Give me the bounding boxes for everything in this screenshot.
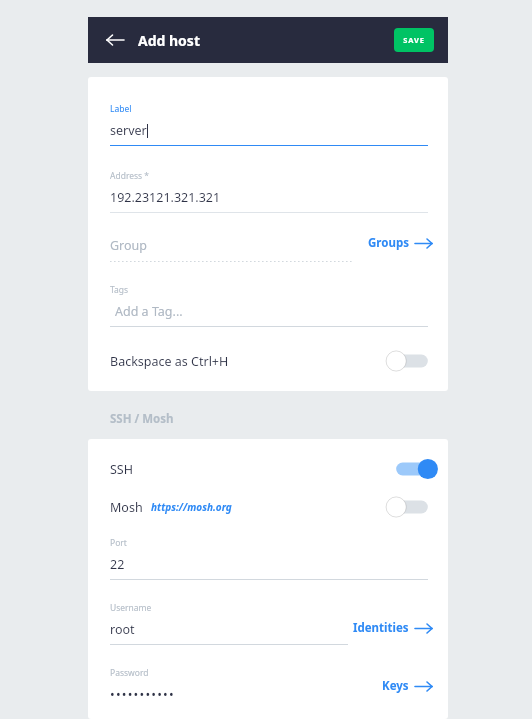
staticText: Label xyxy=(110,103,132,115)
button[interactable]: Keys xyxy=(380,674,434,698)
button[interactable]: Mosh xyxy=(110,495,434,519)
button[interactable]: Groups xyxy=(366,231,434,255)
staticText: Group xyxy=(110,237,147,254)
staticText: SSH / Mosh xyxy=(110,411,174,427)
button[interactable]: Toggle on xyxy=(390,457,434,481)
staticText: Address * xyxy=(110,170,150,182)
staticText: Keys xyxy=(382,678,409,694)
staticText: SAVE xyxy=(403,35,425,45)
button[interactable]: Toggle off xyxy=(390,349,434,373)
staticText: server xyxy=(110,122,147,139)
staticText: ••••••••••• xyxy=(110,686,175,697)
staticText: root xyxy=(110,621,135,638)
button[interactable]: Back xyxy=(102,27,128,53)
staticText: SSH xyxy=(110,461,133,478)
button[interactable]: https://mosh.org xyxy=(151,500,232,514)
staticText: Password xyxy=(110,667,149,679)
button[interactable]: Toggle off xyxy=(390,495,434,519)
button[interactable]: Identities xyxy=(351,616,434,640)
button[interactable]: SAVE xyxy=(394,28,434,52)
staticText: Groups xyxy=(368,235,409,251)
staticText: 192.23121.321.321 xyxy=(110,189,221,206)
button[interactable]: Backspace as Ctrl+H xyxy=(110,349,434,373)
staticText: Backspace as Ctrl+H xyxy=(110,353,229,370)
button[interactable]: SSH xyxy=(110,457,434,481)
staticText: Port xyxy=(110,537,127,549)
staticText: 22 xyxy=(110,556,125,573)
staticText: Tags xyxy=(110,284,129,296)
staticText: Username xyxy=(110,602,152,614)
staticText: Add a Tag... xyxy=(115,303,183,320)
staticText: Add host xyxy=(138,31,200,50)
staticText: Mosh xyxy=(110,499,143,516)
staticText: Identities xyxy=(353,620,409,636)
